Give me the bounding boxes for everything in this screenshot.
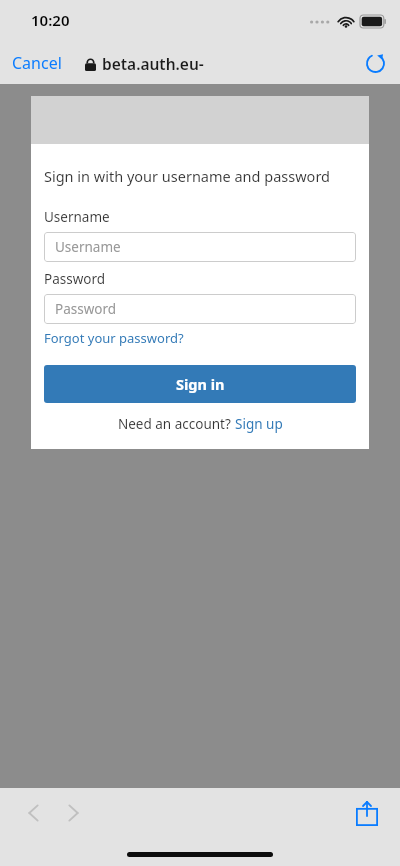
staticText: Need an account?	[118, 415, 235, 433]
button[interactable]: Sign in	[44, 365, 356, 403]
button[interactable]: Share	[348, 794, 386, 832]
button[interactable]: Back	[16, 796, 50, 830]
button[interactable]: Sign up	[235, 415, 283, 433]
button[interactable]: Reload	[358, 46, 392, 80]
staticText: Cancel	[12, 52, 62, 74]
staticText: Forgot your password?	[44, 329, 184, 347]
button[interactable]: Cancel	[0, 46, 70, 80]
staticText: Password	[44, 270, 106, 288]
button[interactable]: Password	[44, 294, 356, 324]
staticText: Username	[44, 208, 110, 226]
button[interactable]: Forgot your password?	[44, 329, 184, 347]
staticText: Username	[55, 238, 121, 256]
staticText: Sign in with your username and password	[44, 166, 330, 186]
button[interactable]: Forward	[56, 796, 90, 830]
button[interactable]: Username	[44, 232, 356, 262]
staticText: 10:20	[31, 10, 70, 30]
staticText: beta.auth.eu-central-1.amazoncognito.com	[102, 53, 353, 74]
staticText: Password	[55, 300, 117, 318]
staticText: Sign up	[235, 415, 283, 433]
staticText: Sign in	[176, 374, 225, 394]
